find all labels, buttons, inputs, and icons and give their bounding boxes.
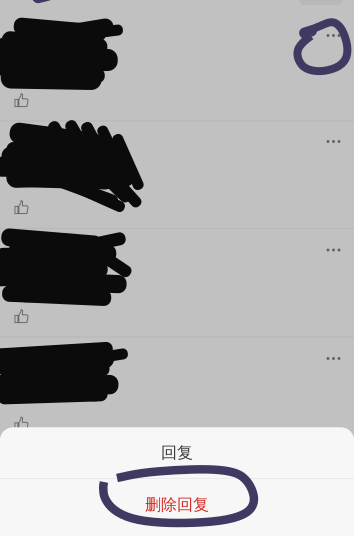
button[interactable]: Like — [7, 89, 35, 111]
button[interactable]: 删除回复 — [0, 479, 354, 530]
button[interactable]: More options — [315, 236, 351, 264]
staticText: 删除回复 — [145, 495, 209, 514]
button[interactable]: More options — [315, 127, 351, 155]
staticText: 回复 — [161, 443, 193, 463]
button[interactable]: More options — [315, 344, 351, 372]
button[interactable]: Like — [7, 412, 35, 434]
button[interactable]: Like — [7, 305, 35, 327]
button[interactable]: More options — [315, 21, 351, 49]
button[interactable]: 回复 — [0, 427, 354, 478]
button[interactable]: Like — [7, 196, 35, 218]
